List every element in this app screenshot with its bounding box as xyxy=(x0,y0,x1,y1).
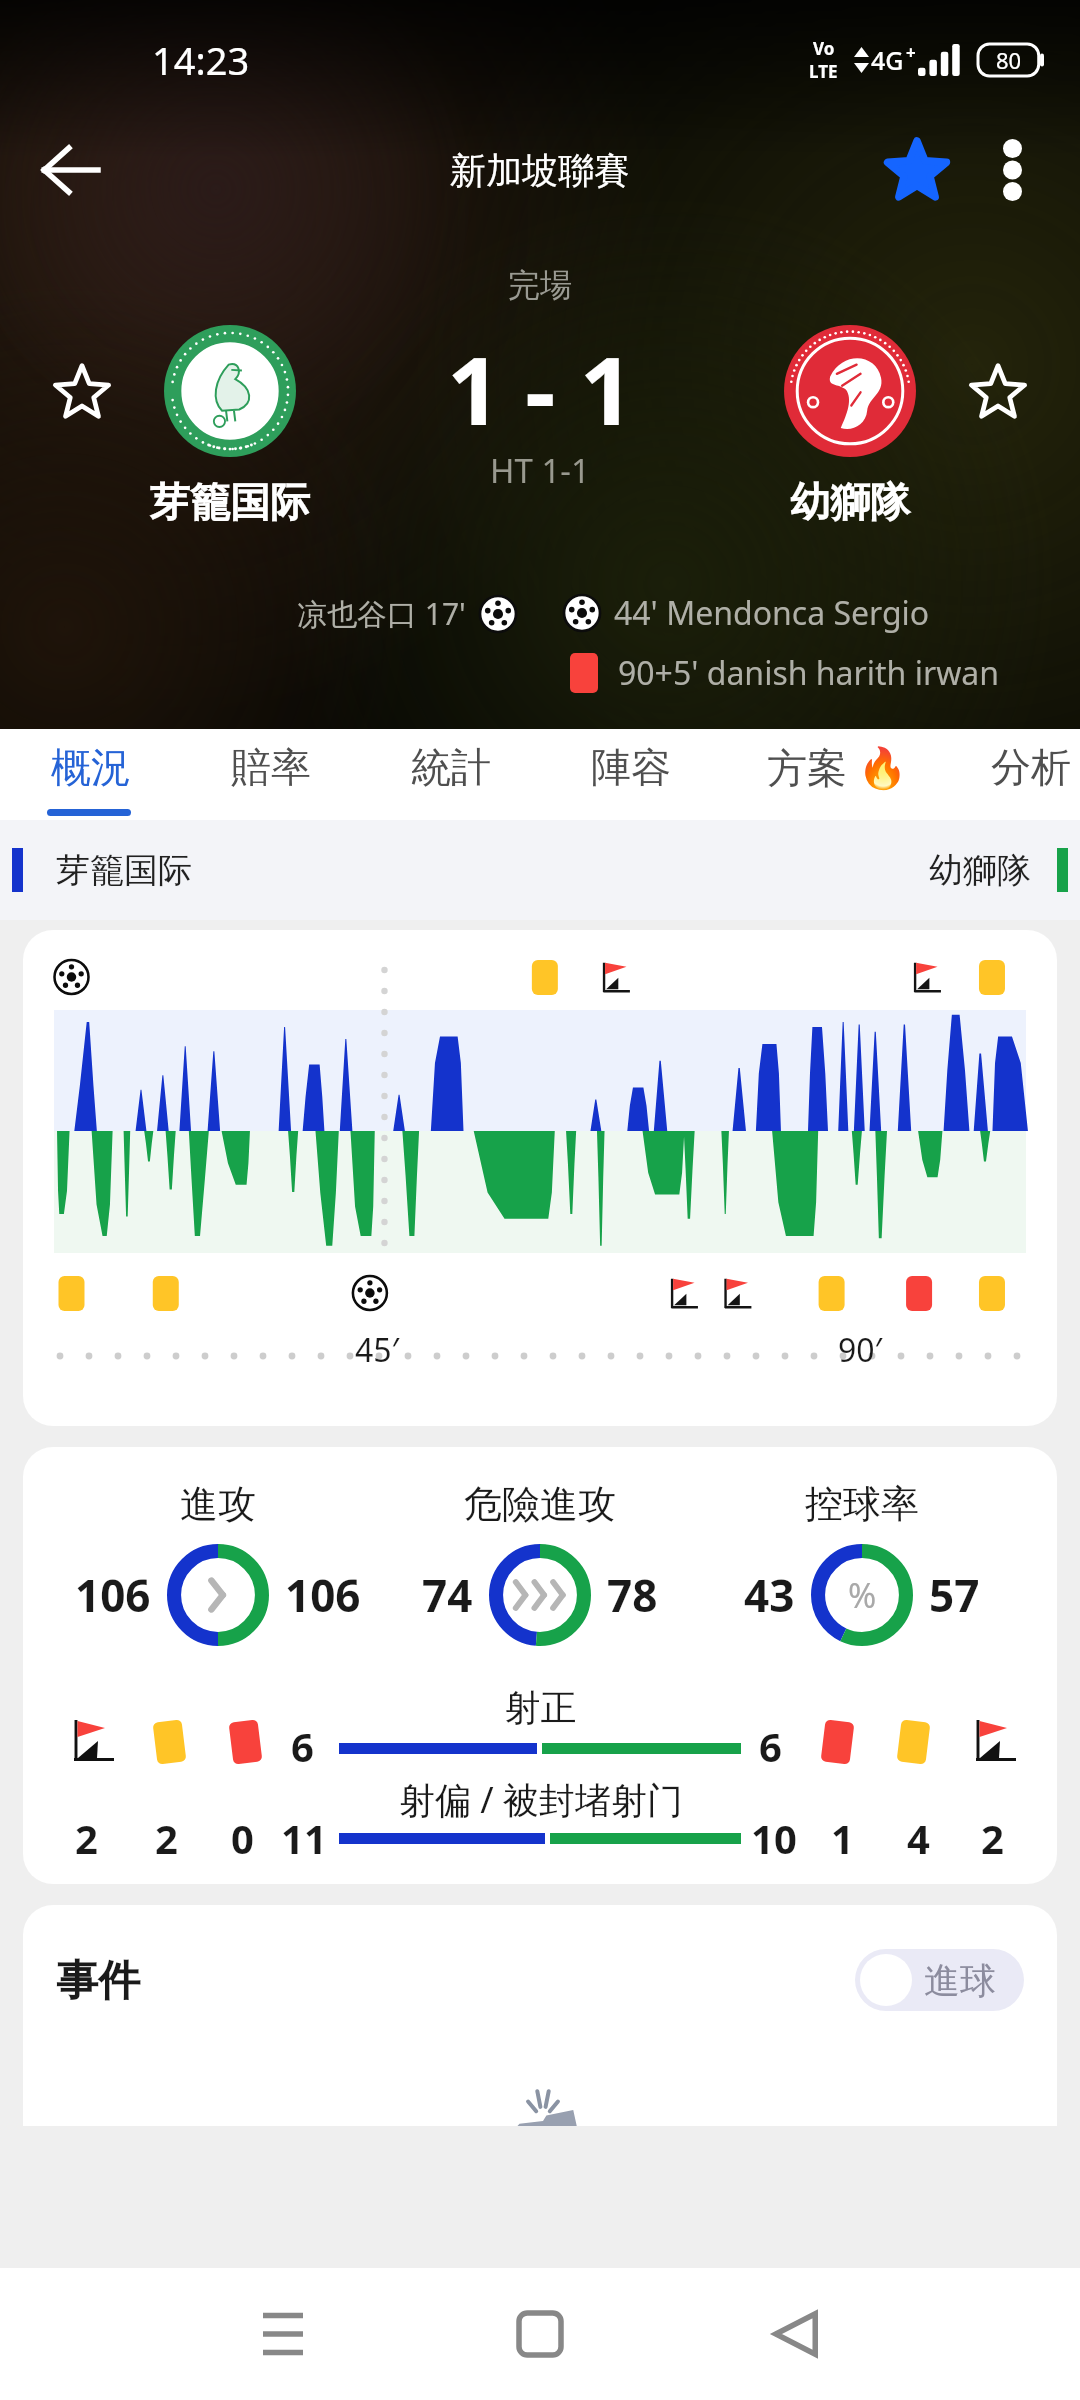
staticText: 進球 xyxy=(924,1958,996,2003)
staticText: 106 xyxy=(75,1565,151,1625)
staticText: Vo xyxy=(813,37,835,60)
button[interactable]: Recent apps xyxy=(219,2268,347,2400)
button[interactable]: 概況 xyxy=(48,729,134,820)
staticText: 2 xyxy=(75,1811,98,1865)
staticText: 10 xyxy=(751,1811,797,1865)
button[interactable]: 分析 xyxy=(988,729,1074,820)
staticText: 90′ xyxy=(838,1328,883,1372)
button[interactable]: More options xyxy=(964,122,1060,218)
staticText: 0 xyxy=(231,1811,254,1865)
staticText: 80 xyxy=(996,45,1022,75)
staticText: 方案 🔥 xyxy=(767,739,908,794)
button[interactable]: 統計 xyxy=(408,729,494,820)
button[interactable]: 賠率 xyxy=(228,729,314,820)
staticText: 射偏 / 被封堵射门 xyxy=(381,1775,701,1824)
button[interactable]: 陣容 xyxy=(588,729,674,820)
staticText: 6 xyxy=(759,1719,782,1773)
staticText: 芽籠国际 xyxy=(56,849,192,892)
staticText: 分析 xyxy=(991,742,1071,792)
staticText: 78 xyxy=(607,1565,658,1625)
staticText: 射正 xyxy=(463,1685,618,1730)
staticText: % xyxy=(848,1572,877,1618)
staticText: 74 xyxy=(422,1565,473,1625)
staticText: HT 1-1 xyxy=(490,448,590,493)
staticText: 43 xyxy=(744,1565,795,1625)
staticText: 4 xyxy=(907,1811,930,1865)
staticText: 90+5' danish harith irwan xyxy=(618,651,1000,695)
staticText: 45′ xyxy=(355,1328,400,1372)
button[interactable]: Back xyxy=(733,2268,861,2400)
button[interactable]: Favourite away team xyxy=(946,340,1050,444)
staticText: 2 xyxy=(155,1811,178,1865)
button[interactable]: 方案 🔥 xyxy=(762,729,912,820)
staticText: 14:23 xyxy=(152,34,250,86)
button[interactable]: 進球 xyxy=(855,1949,1024,2011)
staticText: 6 xyxy=(291,1719,314,1773)
staticText: LTE xyxy=(809,60,838,83)
staticText: 1 xyxy=(831,1811,854,1865)
staticText: 概況 xyxy=(51,742,131,792)
staticText: 陣容 xyxy=(591,742,671,792)
staticText: 57 xyxy=(929,1565,980,1625)
staticText: 106 xyxy=(285,1565,361,1625)
staticText: 44' Mendonca Sergio xyxy=(614,591,930,635)
button[interactable]: Favourite match xyxy=(869,122,965,218)
staticText: 統計 xyxy=(411,742,491,792)
staticText: 控球率 xyxy=(805,1480,919,1528)
staticText: 新加坡聯賽 xyxy=(450,148,630,193)
button[interactable]: Home xyxy=(476,2268,604,2400)
staticText: 進攻 xyxy=(180,1480,256,1528)
staticText: 4G xyxy=(871,43,904,77)
staticText: + xyxy=(906,41,916,64)
staticText: 凉也谷口 17' xyxy=(297,593,466,634)
button[interactable]: Back xyxy=(22,122,118,218)
staticText: 幼獅隊 xyxy=(790,477,910,527)
button[interactable]: Favourite home team xyxy=(30,340,134,444)
staticText: 事件 xyxy=(56,1955,140,2008)
staticText: 賠率 xyxy=(231,742,311,792)
staticText: 11 xyxy=(281,1811,327,1865)
staticText: 危險進攻 xyxy=(464,1480,616,1528)
staticText: 完場 xyxy=(508,265,572,305)
staticText: 芽籠国际 xyxy=(150,477,310,527)
staticText: 2 xyxy=(981,1811,1004,1865)
staticText: 幼獅隊 xyxy=(929,849,1031,892)
staticText: 1 - 1 xyxy=(447,325,634,453)
